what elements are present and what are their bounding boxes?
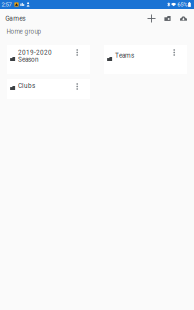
staticText: 2:57 (1, 1, 11, 8)
staticText: Teams (115, 52, 134, 59)
button[interactable]: Clubs (7, 79, 90, 99)
staticText: 2019-2020 (18, 49, 52, 56)
staticText: Home group (7, 28, 42, 35)
button[interactable]: Teams (104, 45, 187, 74)
button[interactable]: 2019-2020 (7, 45, 90, 74)
staticText: Season (18, 56, 39, 63)
staticText: 65% (177, 1, 187, 8)
staticText: Clubs (18, 82, 35, 90)
button[interactable]: Back up (175, 9, 191, 28)
button[interactable]: New (143, 9, 159, 28)
staticText: Games (5, 15, 25, 22)
button[interactable]: New folder (159, 9, 175, 28)
